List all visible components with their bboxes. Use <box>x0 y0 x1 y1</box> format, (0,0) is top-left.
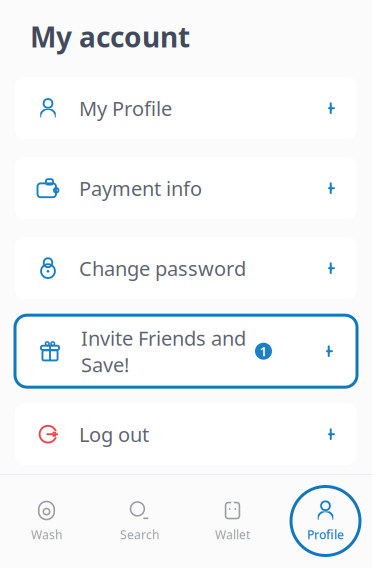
staticText: Log out <box>79 421 149 447</box>
staticText: My account <box>30 18 190 55</box>
button[interactable]: Payment info <box>15 157 357 219</box>
staticText: Wash <box>31 526 62 542</box>
button[interactable]: Invite Friends and Save! <box>15 315 357 387</box>
staticText: Invite Friends and Save! <box>81 325 246 378</box>
staticText: My Profile <box>79 95 172 121</box>
button[interactable]: Search <box>93 474 186 568</box>
staticText: Search <box>120 526 159 542</box>
staticText: 1 <box>259 342 267 360</box>
button[interactable]: Log out <box>15 403 357 465</box>
button[interactable]: Wash <box>0 474 93 568</box>
staticText: Change password <box>79 255 246 281</box>
button[interactable]: Profile <box>279 474 372 568</box>
button[interactable]: My Profile <box>15 77 357 139</box>
staticText: Wallet <box>215 526 250 542</box>
button[interactable]: Wallet <box>186 474 279 568</box>
button[interactable]: Change password <box>15 237 357 299</box>
staticText: Profile <box>307 526 344 542</box>
staticText: Payment info <box>79 175 202 201</box>
